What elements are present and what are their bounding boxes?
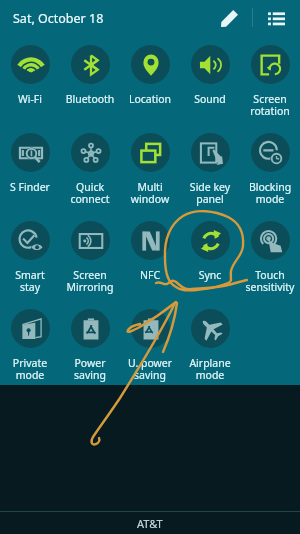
staticText: Airplane mode: [180, 356, 240, 382]
staticText: Sound: [180, 92, 240, 106]
staticText: AT&T: [137, 516, 163, 531]
staticText: Screen rotation: [240, 92, 300, 118]
button[interactable]: Show list: [258, 0, 294, 36]
staticText: Sat, October 18: [13, 10, 104, 27]
staticText: Multi window: [120, 180, 180, 206]
button[interactable]: Screen rotation: [240, 45, 300, 118]
staticText: U. power saving: [120, 356, 180, 382]
button[interactable]: Location: [120, 45, 180, 106]
button[interactable]: Bluetooth: [60, 45, 120, 106]
staticText: Blocking mode: [240, 180, 300, 206]
staticText: Private mode: [0, 356, 60, 382]
staticText: Quick connect: [60, 180, 120, 206]
staticText: Touch sensitivity: [240, 268, 300, 294]
button[interactable]: Smart stay: [0, 221, 60, 294]
button[interactable]: Sound: [180, 45, 240, 106]
button[interactable]: Sync: [180, 221, 240, 282]
button[interactable]: S Finder: [0, 133, 60, 194]
button[interactable]: U. power saving: [120, 309, 180, 382]
button[interactable]: Wi-Fi: [0, 45, 60, 106]
staticText: S Finder: [0, 180, 60, 194]
button[interactable]: Side key panel: [180, 133, 240, 206]
button[interactable]: Airplane mode: [180, 309, 240, 382]
staticText: Screen Mirroring: [60, 268, 120, 294]
button[interactable]: Multi window: [120, 133, 180, 206]
staticText: Bluetooth: [60, 92, 120, 106]
button[interactable]: Quick connect: [60, 133, 120, 206]
button[interactable]: Edit quick settings: [211, 0, 247, 36]
button[interactable]: NFC: [120, 221, 180, 282]
staticText: Sync: [180, 268, 240, 282]
button[interactable]: Touch sensitivity: [240, 221, 300, 294]
button[interactable]: Private mode: [0, 309, 60, 382]
staticText: NFC: [120, 268, 180, 282]
staticText: Wi-Fi: [0, 92, 60, 106]
button[interactable]: Screen Mirroring: [60, 221, 120, 294]
staticText: Smart stay: [0, 268, 60, 294]
staticText: Power saving: [60, 356, 120, 382]
button[interactable]: Power saving: [60, 309, 120, 382]
button[interactable]: Blocking mode: [240, 133, 300, 206]
staticText: Location: [120, 92, 180, 106]
staticText: Side key panel: [180, 180, 240, 206]
